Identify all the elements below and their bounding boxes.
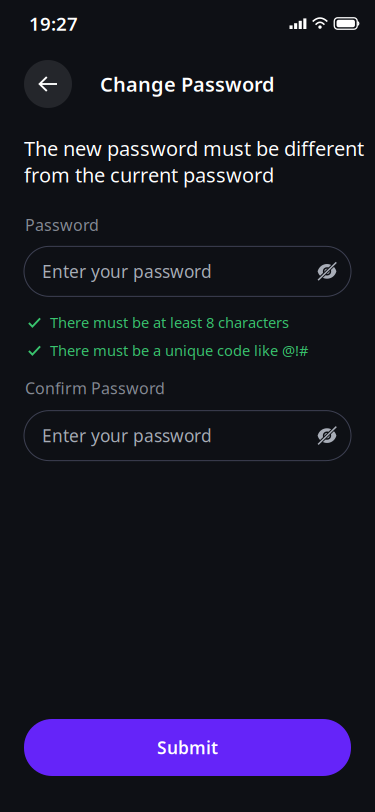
button[interactable]: Back [24, 60, 72, 108]
staticText: 19:27 [29, 11, 78, 36]
staticText: Password [25, 214, 99, 235]
button[interactable]: Enter your password [24, 246, 351, 296]
staticText: The new password must be different from … [24, 135, 364, 188]
staticText: Enter your password [42, 260, 212, 283]
button[interactable]: Enter your password [24, 411, 351, 461]
staticText: Submit [157, 736, 218, 759]
staticText: Confirm Password [25, 377, 165, 399]
staticText: Change Password [100, 71, 275, 97]
staticText: There must be at least 8 characters [50, 313, 289, 332]
staticText: There must be a unique code like @!# [50, 341, 308, 360]
staticText: Enter your password [42, 424, 212, 447]
button[interactable]: Submit [24, 719, 351, 776]
